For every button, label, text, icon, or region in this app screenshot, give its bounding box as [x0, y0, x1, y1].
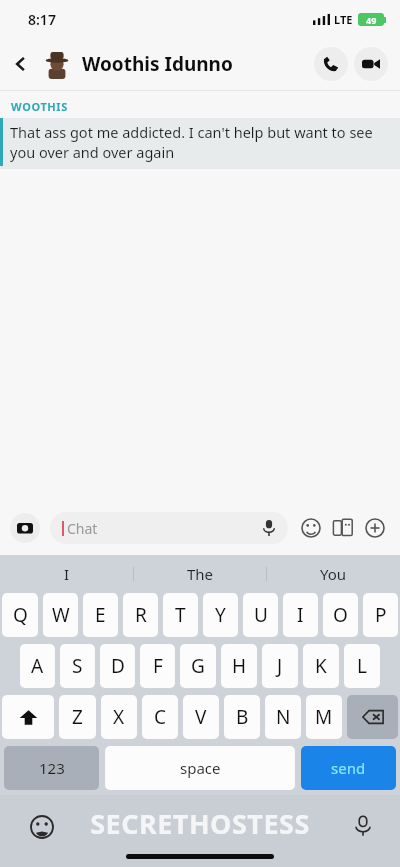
staticText: Chat: [67, 519, 262, 538]
button[interactable]: H: [221, 644, 257, 688]
staticText: SECRETHOSTESS: [90, 805, 310, 842]
staticText: B: [236, 704, 249, 730]
button[interactable]: Stickers: [298, 515, 324, 541]
button[interactable]: G: [180, 644, 216, 688]
button[interactable]: J: [262, 644, 298, 688]
staticText: M: [315, 704, 333, 730]
staticText: WOOTHIS: [11, 99, 68, 114]
button[interactable]: U: [243, 593, 278, 637]
button[interactable]: Shift: [2, 695, 54, 739]
staticText: 49: [366, 14, 377, 26]
staticText: I: [64, 564, 70, 584]
staticText: 8:17: [28, 10, 56, 29]
button[interactable]: L: [344, 644, 380, 688]
staticText: T: [175, 602, 186, 628]
button[interactable]: N: [265, 695, 301, 739]
button[interactable]: Q: [2, 593, 38, 637]
staticText: V: [195, 704, 207, 730]
staticText: P: [375, 602, 387, 628]
button[interactable]: Backspace: [347, 695, 398, 739]
staticText: C: [154, 704, 167, 730]
staticText: H: [232, 653, 247, 679]
staticText: X: [113, 704, 125, 730]
button[interactable]: You: [267, 555, 400, 593]
button[interactable]: Woothis Idunno: [82, 51, 314, 77]
button[interactable]: Y: [203, 593, 238, 637]
staticText: Q: [13, 602, 28, 628]
staticText: U: [254, 602, 268, 628]
staticText: Z: [72, 704, 83, 730]
staticText: O: [333, 602, 348, 628]
staticText: I: [297, 602, 304, 628]
button[interactable]: Camera: [10, 513, 40, 543]
button[interactable]: O: [323, 593, 358, 637]
staticText: N: [276, 704, 291, 730]
button[interactable]: Call: [314, 47, 348, 81]
button[interactable]: 123: [4, 746, 99, 790]
staticText: That ass got me addicted. I can't help b…: [10, 122, 382, 163]
button[interactable]: Video call: [354, 47, 388, 81]
button[interactable]: Cameos: [330, 515, 356, 541]
staticText: K: [315, 653, 327, 679]
button[interactable]: Add: [362, 515, 388, 541]
button[interactable]: Voice input: [352, 815, 374, 837]
button[interactable]: F: [140, 644, 175, 688]
button[interactable]: Z: [59, 695, 96, 739]
staticText: D: [111, 653, 125, 679]
staticText: F: [153, 653, 163, 679]
button[interactable]: send: [301, 746, 396, 790]
staticText: You: [320, 564, 347, 584]
button[interactable]: T: [163, 593, 198, 637]
staticText: The: [187, 564, 214, 584]
button[interactable]: space: [105, 746, 295, 790]
button[interactable]: S: [60, 644, 95, 688]
staticText: A: [31, 653, 44, 679]
staticText: space: [180, 758, 221, 778]
button[interactable]: R: [123, 593, 158, 637]
button[interactable]: I: [283, 593, 318, 637]
button[interactable]: C: [142, 695, 178, 739]
button[interactable]: B: [224, 695, 260, 739]
staticText: Y: [215, 602, 226, 628]
button[interactable]: Chat: [50, 512, 288, 544]
staticText: W: [52, 602, 70, 628]
button[interactable]: I: [0, 555, 134, 593]
staticText: J: [277, 653, 283, 679]
button[interactable]: P: [363, 593, 398, 637]
button[interactable]: K: [303, 644, 339, 688]
button[interactable]: Back: [0, 38, 42, 90]
button[interactable]: The: [134, 555, 267, 593]
staticText: L: [357, 653, 367, 679]
button[interactable]: D: [100, 644, 135, 688]
staticText: S: [72, 653, 83, 679]
button[interactable]: X: [101, 695, 137, 739]
button[interactable]: M: [306, 695, 342, 739]
button[interactable]: V: [183, 695, 219, 739]
button[interactable]: Emoji: [30, 815, 54, 839]
staticText: E: [95, 602, 106, 628]
staticText: 123: [39, 758, 65, 778]
button[interactable]: W: [43, 593, 78, 637]
staticText: send: [331, 758, 366, 778]
button[interactable]: E: [83, 593, 118, 637]
staticText: G: [191, 653, 205, 679]
staticText: LTE: [334, 12, 353, 27]
button[interactable]: A: [20, 644, 55, 688]
staticText: R: [135, 602, 147, 628]
